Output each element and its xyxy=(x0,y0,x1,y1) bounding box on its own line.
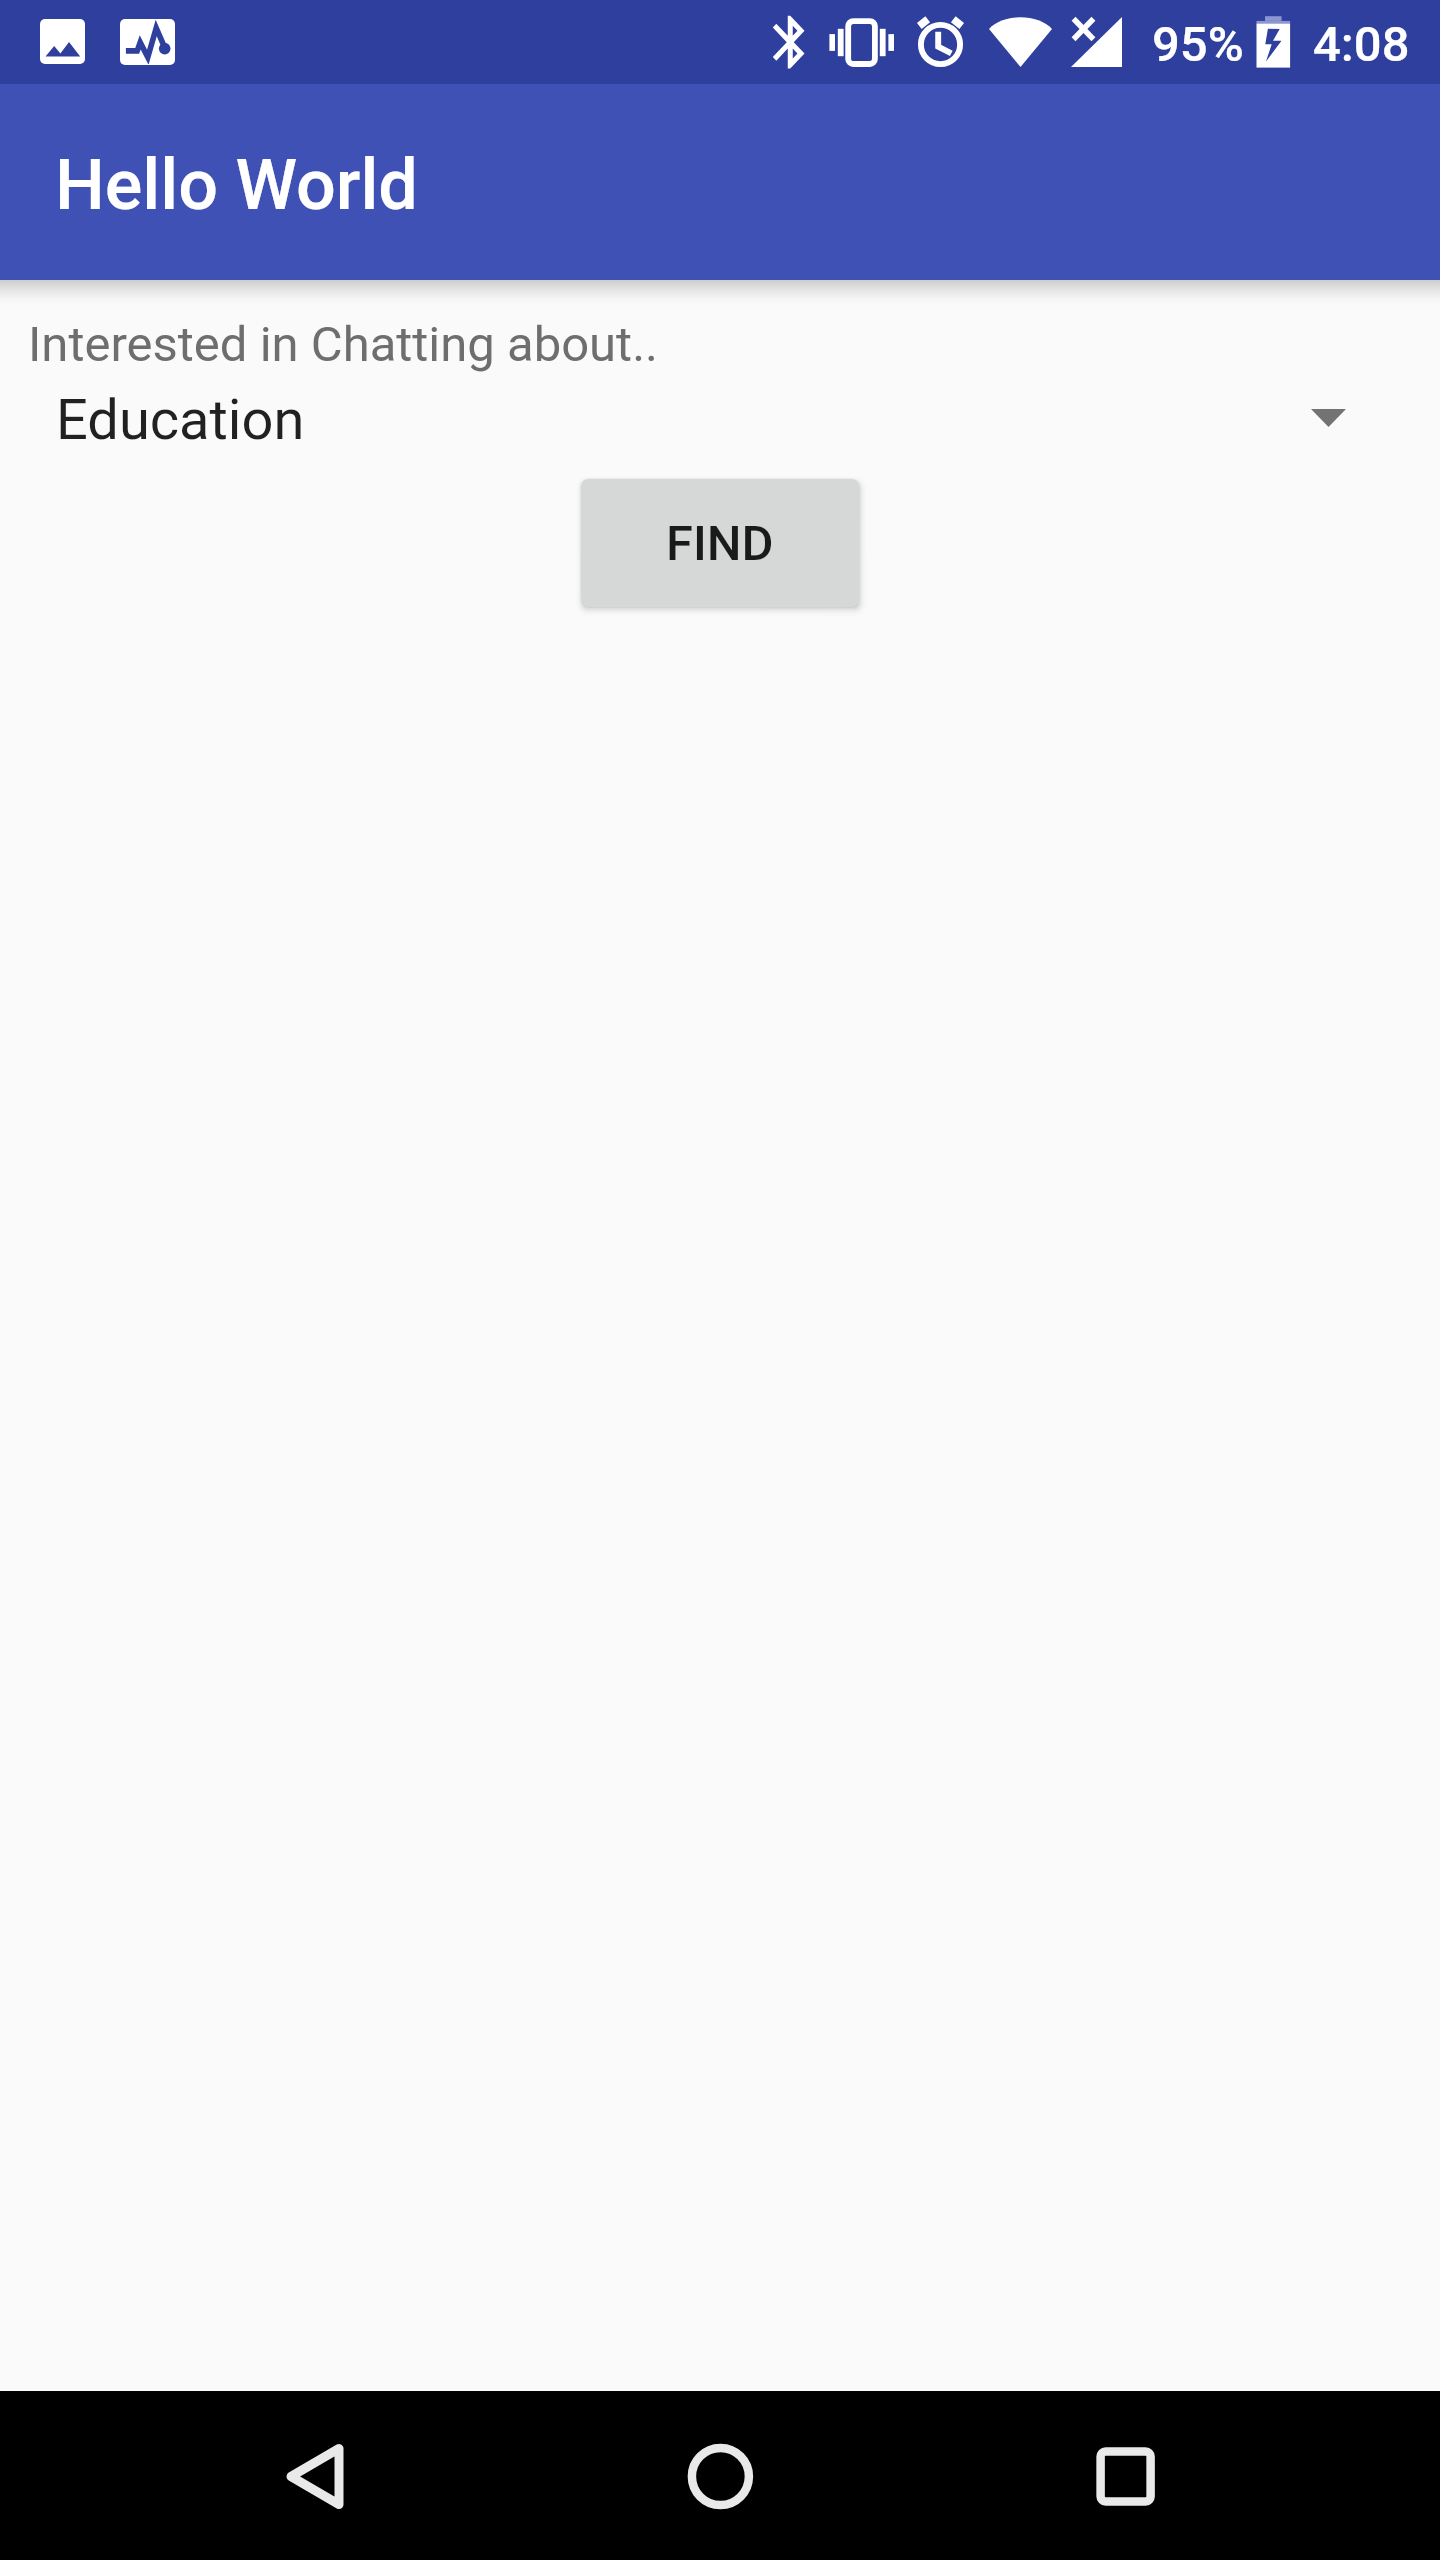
button[interactable]: Back xyxy=(230,2391,400,2560)
staticText: Education xyxy=(56,387,305,453)
staticText: FIND xyxy=(666,515,774,572)
staticText: 95% xyxy=(1152,16,1244,73)
button[interactable]: Education xyxy=(0,376,1440,464)
button[interactable]: Recent apps xyxy=(1040,2391,1210,2560)
staticText: Interested in Chatting about.. xyxy=(28,316,658,373)
staticText: Hello World xyxy=(55,144,418,226)
button[interactable]: FIND xyxy=(581,479,859,607)
staticText: 4:08 xyxy=(1313,16,1410,73)
button[interactable]: Home xyxy=(635,2391,805,2560)
